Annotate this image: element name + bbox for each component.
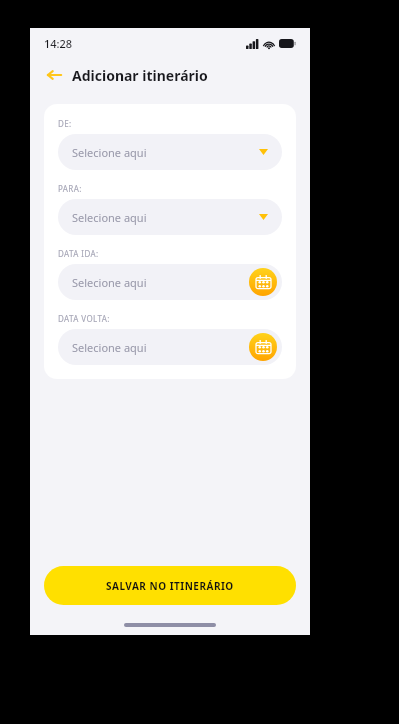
staticText: DATA VOLTA: <box>58 313 110 324</box>
staticText: PARA: <box>58 183 82 194</box>
staticText: Selecione aqui <box>72 210 147 225</box>
button[interactable]: Selecionar data <box>249 268 277 296</box>
staticText: Adicionar itinerário <box>72 66 208 85</box>
staticText: DATA IDA: <box>58 248 99 259</box>
staticText: Selecione aqui <box>72 340 147 355</box>
staticText: SALVAR NO ITINERÁRIO <box>106 579 234 593</box>
button[interactable]: Selecionar data <box>249 333 277 361</box>
button[interactable]: Selecione aqui <box>58 264 282 300</box>
button[interactable]: Selecione aqui <box>58 199 282 235</box>
button[interactable]: SALVAR NO ITINERÁRIO <box>44 566 296 605</box>
button[interactable]: Selecione aqui <box>58 329 282 365</box>
staticText: Selecione aqui <box>72 275 147 290</box>
staticText: Selecione aqui <box>72 145 147 160</box>
button[interactable]: Voltar <box>43 64 65 86</box>
staticText: DE: <box>58 118 72 129</box>
button[interactable]: Selecione aqui <box>58 134 282 170</box>
staticText: 14:28 <box>44 36 73 51</box>
